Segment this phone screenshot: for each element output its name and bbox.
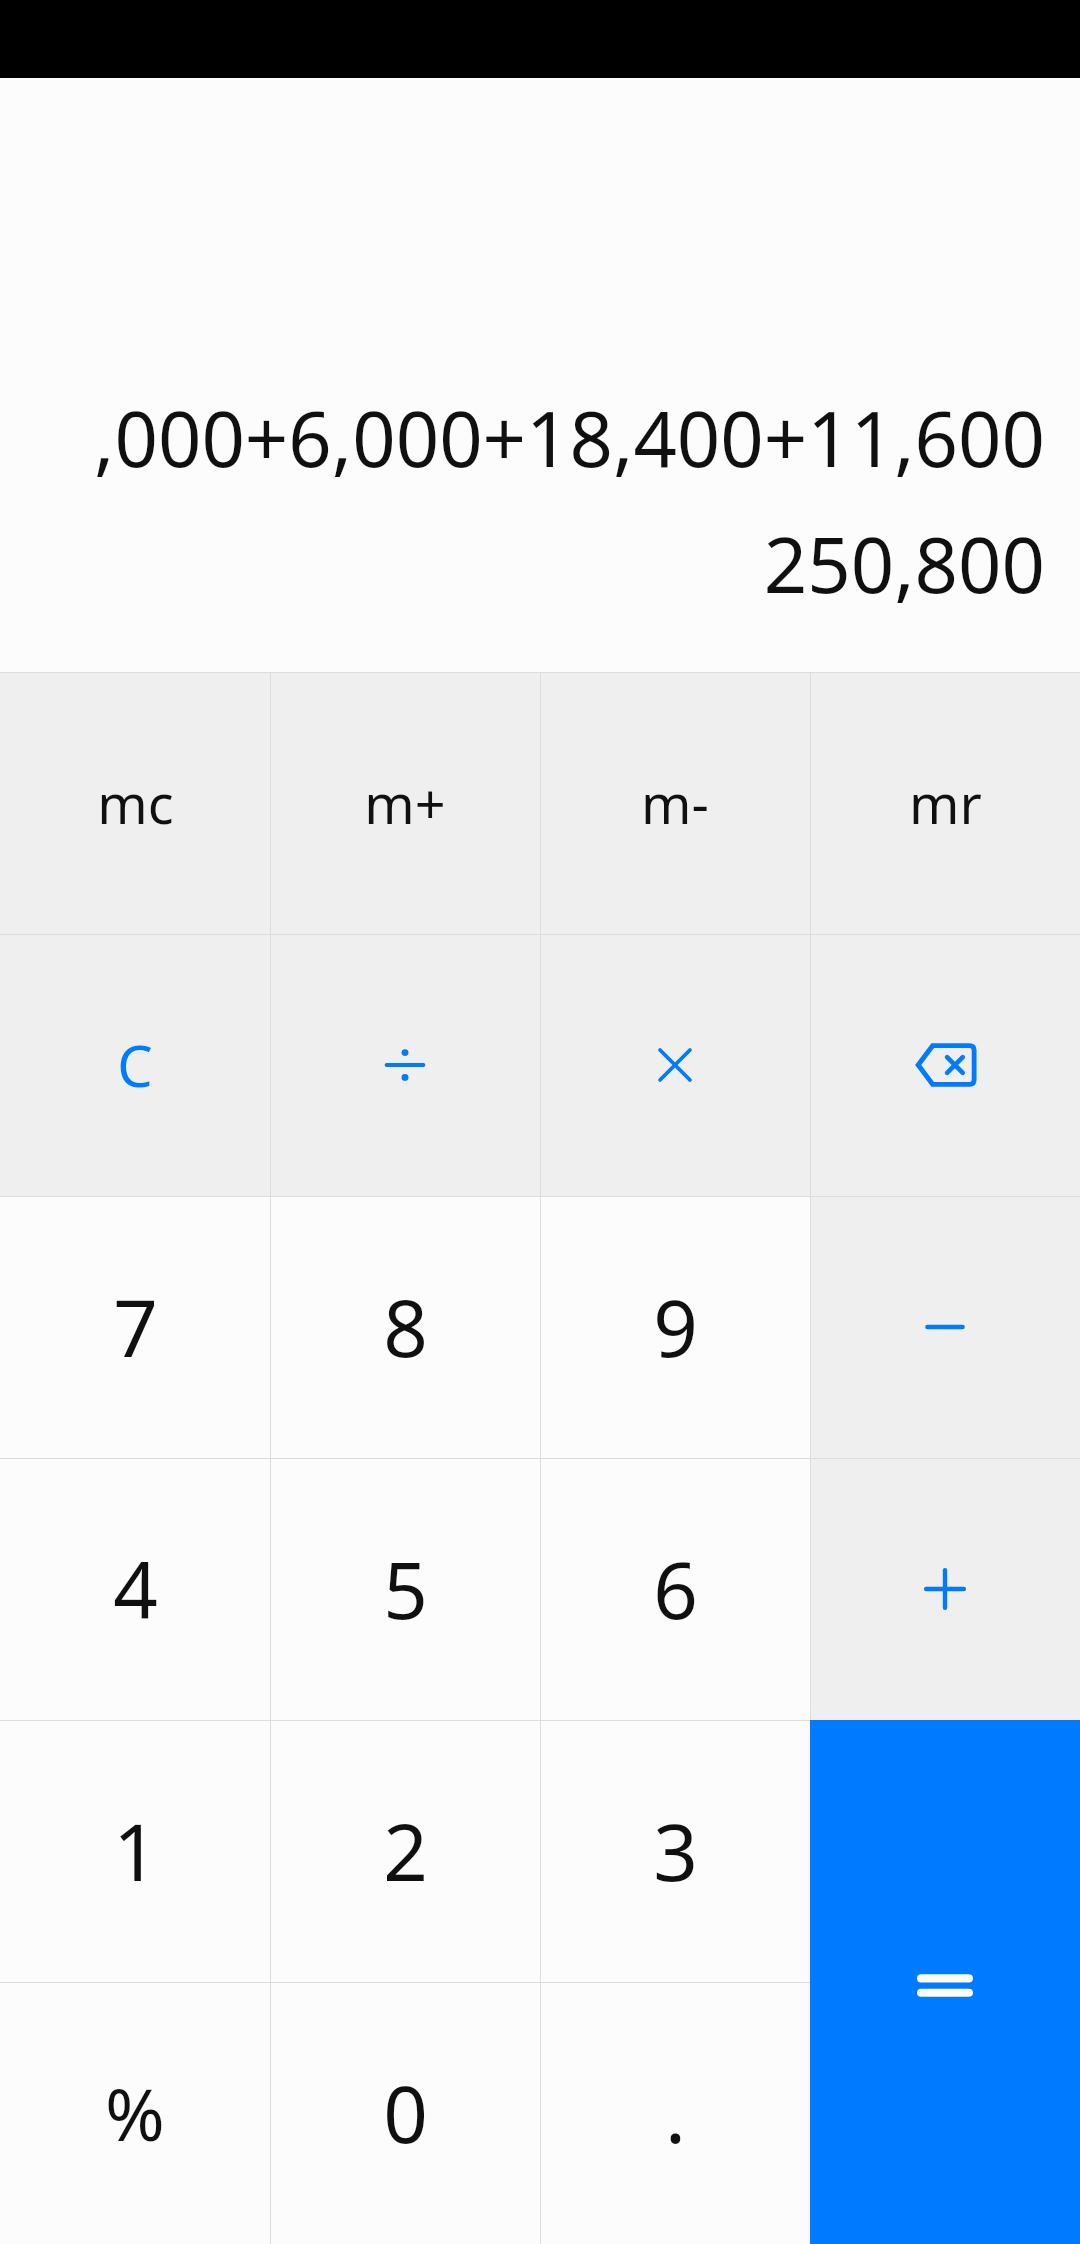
staticText: 3: [653, 1798, 698, 1904]
button[interactable]: mc: [0, 672, 270, 934]
button[interactable]: 5: [270, 1458, 540, 1720]
staticText: 7: [113, 1274, 158, 1380]
staticText: 1: [113, 1798, 158, 1904]
button[interactable]: Backspace: [810, 934, 1080, 1196]
staticText: 4: [113, 1536, 158, 1642]
staticText: 8: [383, 1274, 428, 1380]
staticText: 250,800: [763, 512, 1045, 616]
staticText: m+: [364, 766, 446, 840]
button[interactable]: Minus: [810, 1196, 1080, 1458]
button[interactable]: 0: [270, 1982, 540, 2244]
button[interactable]: 4: [0, 1458, 270, 1720]
staticText: 6: [653, 1536, 698, 1642]
button[interactable]: Plus: [810, 1458, 1080, 1720]
button[interactable]: 6: [540, 1458, 810, 1720]
button[interactable]: Clear: [0, 934, 270, 1196]
button[interactable]: m+: [270, 672, 540, 934]
button[interactable]: 3: [540, 1720, 810, 1982]
button[interactable]: 2: [270, 1720, 540, 1982]
staticText: mr: [909, 766, 982, 840]
staticText: .: [665, 2060, 686, 2166]
staticText: %: [105, 2064, 165, 2162]
button[interactable]: mr: [810, 672, 1080, 934]
button[interactable]: 7: [0, 1196, 270, 1458]
button[interactable]: m-: [540, 672, 810, 934]
staticText: mc: [97, 766, 174, 840]
button[interactable]: 9: [540, 1196, 810, 1458]
staticText: ,000+6,000+18,400+11,600: [94, 386, 1045, 490]
button[interactable]: 1: [0, 1720, 270, 1982]
button[interactable]: Percent: [0, 1982, 270, 2244]
staticText: 5: [383, 1536, 428, 1642]
button[interactable]: Multiply: [540, 934, 810, 1196]
button[interactable]: 8: [270, 1196, 540, 1458]
button[interactable]: Equals: [810, 1720, 1080, 2244]
staticText: 2: [383, 1798, 428, 1904]
staticText: 9: [653, 1274, 698, 1380]
staticText: m-: [641, 766, 709, 840]
button[interactable]: Decimal point: [540, 1982, 810, 2244]
button[interactable]: Divide: [270, 934, 540, 1196]
staticText: C: [117, 1027, 153, 1103]
staticText: 0: [383, 2060, 428, 2166]
